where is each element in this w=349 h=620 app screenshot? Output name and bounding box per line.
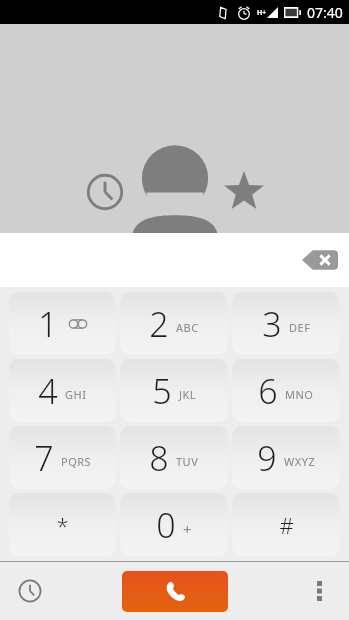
- staticText: MNO: [285, 387, 314, 402]
- staticText: 6: [258, 368, 278, 414]
- staticText: ABC: [176, 320, 199, 335]
- staticText: 1: [38, 301, 58, 347]
- button[interactable]: 3: [232, 292, 340, 355]
- button[interactable]: Call history: [6, 567, 54, 615]
- staticText: H+: [257, 8, 267, 18]
- staticText: 4: [38, 368, 58, 414]
- staticText: 7: [34, 435, 54, 481]
- button[interactable]: 8: [120, 426, 228, 489]
- staticText: 2: [149, 301, 169, 347]
- button[interactable]: *: [9, 493, 116, 556]
- staticText: JKL: [179, 387, 197, 402]
- staticText: DEF: [289, 320, 311, 335]
- button[interactable]: 7: [9, 426, 116, 489]
- staticText: PQRS: [61, 454, 92, 469]
- staticText: TUV: [176, 454, 199, 469]
- staticText: 8: [149, 435, 169, 481]
- button[interactable]: 6: [232, 359, 340, 422]
- button[interactable]: 5: [120, 359, 228, 422]
- staticText: WXYZ: [284, 454, 316, 469]
- button[interactable]: #: [232, 493, 340, 556]
- staticText: 3: [262, 301, 282, 347]
- button[interactable]: Call: [122, 571, 228, 612]
- button[interactable]: 4: [9, 359, 116, 422]
- button[interactable]: 1: [9, 292, 116, 355]
- button[interactable]: More options: [295, 567, 343, 615]
- staticText: 5: [152, 368, 172, 414]
- staticText: +: [183, 519, 193, 539]
- staticText: GHI: [65, 387, 87, 402]
- button[interactable]: 2: [120, 292, 228, 355]
- staticText: 0: [156, 502, 176, 548]
- staticText: #: [279, 510, 294, 540]
- button[interactable]: 0: [120, 493, 228, 556]
- staticText: *: [56, 510, 69, 540]
- button[interactable]: 9: [232, 426, 340, 489]
- staticText: 07:40: [307, 3, 343, 22]
- staticText: 9: [257, 435, 277, 481]
- button[interactable]: Backspace: [295, 238, 345, 282]
